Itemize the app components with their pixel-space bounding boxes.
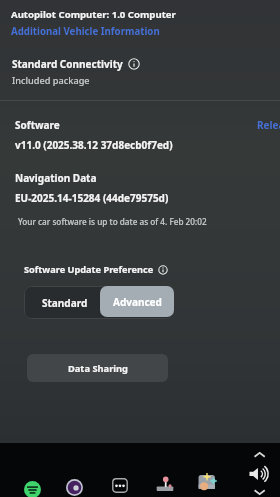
button[interactable]: Standard [27, 286, 103, 319]
button[interactable]: More apps [112, 478, 128, 493]
staticText: Standard [42, 296, 88, 310]
staticText: Standard Connectivity [12, 57, 123, 71]
button[interactable]: Volume [243, 449, 277, 497]
staticText: Data Sharing [68, 362, 128, 375]
button[interactable]: Standard Connectivity [12, 57, 140, 71]
button[interactable]: Voice assistant [66, 479, 83, 496]
button[interactable]: Data Sharing [27, 354, 168, 382]
other: Information [158, 265, 168, 275]
button[interactable]: Additional Vehicle Information [11, 25, 160, 38]
button[interactable]: Toybox [156, 474, 174, 492]
button[interactable]: Software Update Preference [24, 263, 168, 276]
button[interactable]: Autopilot Computer: 1.0 Computer [11, 8, 176, 21]
staticText: Software Update Preference [24, 263, 154, 276]
staticText: EU-2025.14-15284 (44de79575d) [15, 191, 169, 205]
button[interactable]: Photos [198, 473, 216, 490]
button[interactable]: Advanced [100, 286, 174, 317]
button[interactable]: Release Notes [257, 118, 280, 132]
button[interactable]: Spotify [24, 481, 41, 497]
staticText: v11.0 (2025.38.12 37d8ecb0f7ed) [15, 138, 173, 152]
staticText: Your car software is up to date as of 4.… [18, 216, 207, 227]
staticText: Software [15, 118, 60, 132]
staticText: Advanced [113, 295, 162, 309]
staticText: Included package [12, 74, 90, 87]
staticText: Navigation Data [15, 171, 97, 185]
other: Information [128, 58, 140, 70]
